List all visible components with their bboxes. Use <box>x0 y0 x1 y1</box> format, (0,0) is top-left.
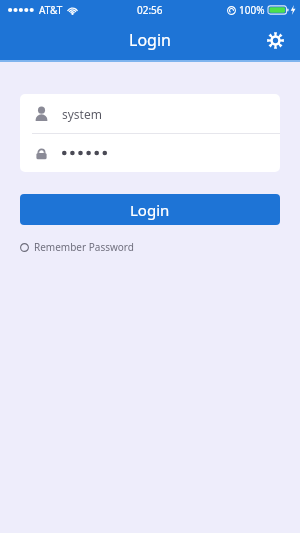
button[interactable] <box>20 134 280 172</box>
staticText: 02:56 <box>137 3 163 17</box>
button[interactable]: Login <box>20 194 280 225</box>
staticText: 100% <box>239 3 265 17</box>
staticText: Login <box>130 200 170 220</box>
staticText: Login <box>129 29 171 51</box>
staticText: system <box>62 106 102 122</box>
button[interactable]: Remember Password <box>20 238 134 256</box>
button[interactable]: system <box>20 94 280 133</box>
staticText: Remember Password <box>34 240 134 254</box>
button[interactable]: Settings <box>262 27 288 53</box>
staticText: AT&T <box>39 3 63 17</box>
